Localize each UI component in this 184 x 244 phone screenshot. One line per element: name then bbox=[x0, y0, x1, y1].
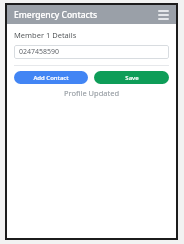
staticText: Add Contact bbox=[33, 74, 69, 82]
staticText: Save bbox=[125, 74, 139, 82]
staticText: Member 1 Details bbox=[14, 30, 77, 40]
button[interactable]: Add Contact bbox=[14, 71, 88, 84]
staticText: Emergency Contacts bbox=[14, 9, 98, 21]
staticText: 0247458590 bbox=[19, 47, 60, 57]
staticText: Profile Updated bbox=[14, 88, 169, 98]
button[interactable]: 0247458590 bbox=[14, 45, 169, 59]
button[interactable]: Menu bbox=[158, 9, 169, 20]
button[interactable]: Save bbox=[94, 71, 169, 84]
